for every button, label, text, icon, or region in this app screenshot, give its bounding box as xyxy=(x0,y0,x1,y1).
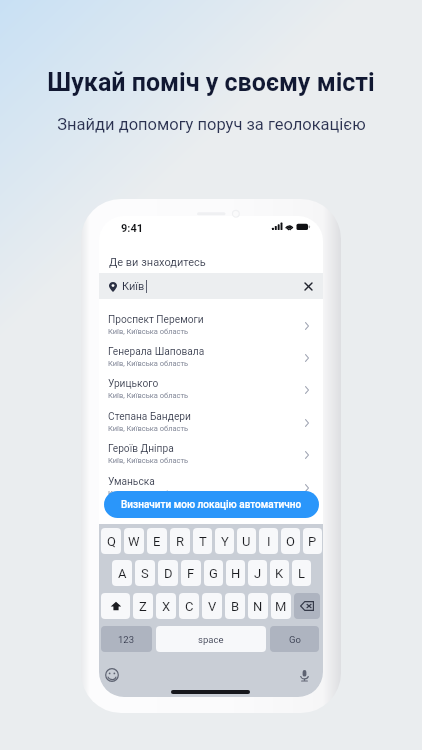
button[interactable]: R xyxy=(170,528,190,554)
staticText: V xyxy=(208,599,217,614)
button[interactable]: J xyxy=(248,560,267,586)
button[interactable]: T xyxy=(193,528,212,554)
button[interactable]: H xyxy=(226,560,245,586)
button[interactable]: I xyxy=(259,528,278,554)
staticText: I xyxy=(267,534,271,549)
button[interactable]: Генерала Шаповала xyxy=(99,344,323,376)
staticText: T xyxy=(199,534,207,549)
staticText: O xyxy=(286,534,295,549)
button[interactable]: K xyxy=(270,560,289,586)
button[interactable]: A xyxy=(112,560,132,586)
button[interactable]: Shift xyxy=(101,593,130,619)
button[interactable]: Київ xyxy=(99,273,323,299)
staticText: Київ, Київська область xyxy=(108,359,189,368)
staticText: M xyxy=(275,599,287,614)
button[interactable]: space xyxy=(156,626,266,652)
staticText: Київ xyxy=(122,280,145,293)
staticText: N xyxy=(253,599,263,614)
staticText: space xyxy=(198,634,224,645)
staticText: Z xyxy=(139,599,147,614)
button[interactable]: Emoji keyboard xyxy=(103,666,121,684)
staticText: Проспект Перемоги xyxy=(108,314,204,326)
button[interactable]: Уманьска xyxy=(99,474,323,506)
button[interactable]: U xyxy=(237,528,256,554)
staticText: Київ, Київська область xyxy=(108,424,189,433)
staticText: F xyxy=(187,566,195,581)
button[interactable]: V xyxy=(202,593,222,619)
staticText: Київ, Київська область xyxy=(108,391,189,400)
staticText: A xyxy=(118,566,127,581)
button[interactable]: D xyxy=(158,560,178,586)
staticText: J xyxy=(254,566,262,581)
button[interactable]: L xyxy=(292,560,311,586)
staticText: U xyxy=(242,534,251,549)
staticText: Q xyxy=(107,534,116,549)
staticText: Знайди допомогу поруч за геолокацією xyxy=(57,115,366,134)
button[interactable]: W xyxy=(124,528,144,554)
button[interactable]: N xyxy=(248,593,268,619)
button[interactable]: Визначити мою локацію автоматично xyxy=(104,491,319,518)
button[interactable]: O xyxy=(281,528,300,554)
staticText: H xyxy=(231,566,241,581)
button[interactable]: Урицького xyxy=(99,376,323,408)
staticText: E xyxy=(153,534,161,549)
button[interactable]: C xyxy=(179,593,199,619)
button[interactable]: 123 xyxy=(101,626,152,652)
button[interactable]: F xyxy=(181,560,201,586)
button[interactable]: Backspace xyxy=(294,593,320,619)
staticText: Go xyxy=(289,634,301,645)
staticText: Генерала Шаповала xyxy=(108,346,205,358)
staticText: X xyxy=(162,599,171,614)
staticText: Степана Бандери xyxy=(108,411,191,423)
button[interactable]: Степана Бандери xyxy=(99,409,323,441)
staticText: 123 xyxy=(118,634,135,645)
staticText: 9:41 xyxy=(121,222,144,235)
button[interactable]: M xyxy=(271,593,291,619)
button[interactable]: E xyxy=(147,528,167,554)
staticText: D xyxy=(164,566,173,581)
button[interactable]: G xyxy=(204,560,223,586)
staticText: Урицького xyxy=(108,378,159,390)
staticText: W xyxy=(128,534,140,549)
button[interactable]: Проспект Перемоги xyxy=(99,312,323,344)
staticText: G xyxy=(209,566,218,581)
staticText: P xyxy=(308,534,317,549)
button[interactable]: X xyxy=(156,593,176,619)
staticText: B xyxy=(231,599,240,614)
button[interactable]: B xyxy=(225,593,245,619)
button[interactable]: P xyxy=(303,528,322,554)
button[interactable]: Z xyxy=(133,593,153,619)
staticText: R xyxy=(176,534,185,549)
staticText: Шукай поміч у своєму місті xyxy=(47,68,375,97)
button[interactable]: Y xyxy=(215,528,234,554)
button[interactable]: S xyxy=(135,560,155,586)
staticText: Київ, Київська область xyxy=(108,456,189,465)
staticText: Де ви знаходитесь xyxy=(109,256,206,269)
staticText: Героїв Дніпра xyxy=(108,443,174,455)
button[interactable]: Героїв Дніпра xyxy=(99,441,323,473)
staticText: S xyxy=(141,566,149,581)
button[interactable]: Q xyxy=(101,528,121,554)
staticText: Визначити мою локацію автоматично xyxy=(121,499,302,511)
staticText: L xyxy=(298,566,306,581)
button[interactable]: Voice input xyxy=(295,666,313,684)
staticText: Київ, Київська область xyxy=(108,327,189,336)
staticText: K xyxy=(275,566,284,581)
button[interactable]: Go xyxy=(270,626,319,652)
button[interactable]: Clear text xyxy=(302,280,315,293)
staticText: C xyxy=(185,599,194,614)
staticText: Київ, Київська область xyxy=(108,489,189,498)
staticText: Уманьска xyxy=(108,476,155,488)
staticText: Y xyxy=(221,534,229,549)
